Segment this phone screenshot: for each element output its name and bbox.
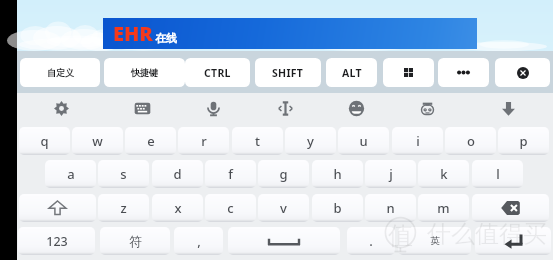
staticText: a: [67, 165, 75, 183]
button[interactable]: ALT: [326, 58, 377, 87]
staticText: m: [437, 199, 450, 217]
button[interactable]: 自定义: [20, 58, 100, 87]
button[interactable]: u: [338, 127, 389, 155]
staticText: 英: [430, 235, 440, 247]
button[interactable]: Voice input: [196, 93, 230, 124]
staticText: k: [440, 165, 448, 183]
staticText: EHR: [113, 20, 153, 47]
button[interactable]: Settings: [44, 93, 78, 124]
staticText: w: [92, 132, 103, 150]
button[interactable]: l: [472, 160, 523, 188]
button[interactable]: y: [285, 127, 336, 155]
staticText: f: [228, 165, 233, 183]
button[interactable]: o: [445, 127, 496, 155]
button[interactable]: q: [19, 127, 70, 155]
staticText: 在线: [155, 31, 177, 45]
button[interactable]: Hide keyboard: [491, 93, 525, 124]
button[interactable]: SHIFT: [255, 58, 321, 87]
button[interactable]: CTRL: [185, 58, 250, 87]
staticText: 什么值得买: [427, 219, 547, 249]
button[interactable]: Emoji: [339, 93, 373, 124]
staticText: SHIFT: [272, 66, 304, 80]
staticText: 123: [46, 233, 68, 250]
button[interactable]: n: [365, 194, 416, 222]
staticText: .: [369, 232, 373, 250]
button[interactable]: Keyboard layout: [125, 93, 159, 124]
button[interactable]: b: [312, 194, 363, 222]
button[interactable]: Shift: [19, 194, 96, 222]
button[interactable]: h: [312, 160, 363, 188]
button[interactable]: z: [98, 194, 149, 222]
button[interactable]: r: [178, 127, 229, 155]
staticText: 符: [129, 233, 142, 249]
button[interactable]: w: [72, 127, 123, 155]
staticText: i: [416, 132, 420, 150]
button[interactable]: Assistant: [410, 93, 444, 124]
button[interactable]: Backspace: [472, 194, 549, 222]
staticText: r: [201, 132, 207, 150]
button[interactable]: ,: [174, 227, 223, 255]
button[interactable]: p: [498, 127, 549, 155]
button[interactable]: e: [125, 127, 176, 155]
staticText: e: [147, 132, 155, 150]
staticText: y: [307, 132, 314, 150]
staticText: u: [359, 132, 368, 150]
staticText: h: [333, 165, 342, 183]
button[interactable]: a: [45, 160, 96, 188]
button[interactable]: More: [438, 58, 489, 87]
button[interactable]: Space: [228, 227, 340, 255]
staticText: 快捷键: [131, 67, 158, 78]
staticText: ALT: [342, 66, 362, 80]
button[interactable]: t: [232, 127, 283, 155]
staticText: c: [227, 199, 234, 217]
button[interactable]: 快捷键: [104, 58, 185, 87]
button[interactable]: 英: [398, 227, 471, 255]
button[interactable]: Enter: [475, 227, 551, 255]
button[interactable]: i: [392, 127, 443, 155]
staticText: t: [255, 132, 260, 150]
staticText: z: [120, 199, 127, 217]
staticText: b: [333, 199, 342, 217]
staticText: q: [40, 132, 49, 150]
button[interactable]: j: [365, 160, 416, 188]
button[interactable]: v: [258, 194, 309, 222]
staticText: 自定义: [47, 67, 74, 78]
button[interactable]: x: [152, 194, 203, 222]
button[interactable]: d: [152, 160, 203, 188]
button[interactable]: Cursor move: [268, 93, 302, 124]
button[interactable]: g: [258, 160, 309, 188]
button[interactable]: c: [205, 194, 256, 222]
staticText: x: [174, 199, 182, 217]
button[interactable]: 符: [100, 227, 170, 255]
staticText: ,: [197, 232, 201, 250]
staticText: o: [467, 132, 475, 150]
button[interactable]: Close: [495, 58, 550, 87]
button[interactable]: .: [347, 227, 395, 255]
button[interactable]: s: [98, 160, 149, 188]
button[interactable]: k: [418, 160, 469, 188]
button[interactable]: m: [418, 194, 469, 222]
staticText: n: [386, 199, 395, 217]
button[interactable]: 123: [18, 227, 95, 255]
staticText: d: [173, 165, 182, 183]
staticText: l: [496, 165, 500, 183]
staticText: p: [519, 132, 528, 150]
button[interactable]: Windows key: [383, 58, 434, 87]
staticText: CTRL: [204, 66, 231, 80]
staticText: g: [279, 165, 288, 183]
button[interactable]: f: [205, 160, 256, 188]
button[interactable]: EHR: [103, 18, 477, 49]
staticText: j: [389, 165, 393, 183]
staticText: v: [280, 199, 287, 217]
staticText: s: [120, 165, 127, 183]
staticText: 值: [388, 220, 413, 251]
